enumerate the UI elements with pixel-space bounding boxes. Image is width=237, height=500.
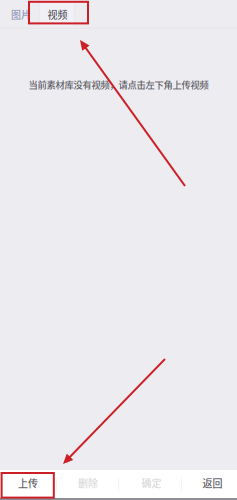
button[interactable]: 返回: [186, 470, 237, 496]
staticText: 当前素材库没有视频，请点击左下角上传视频: [28, 78, 208, 91]
button[interactable]: 视频: [40, 1, 75, 27]
staticText: 图片: [11, 7, 31, 22]
button[interactable]: 图片: [1, 1, 40, 27]
button[interactable]: 确定: [120, 470, 183, 496]
staticText: 确定: [141, 476, 161, 490]
button[interactable]: 删除: [57, 470, 119, 496]
staticText: 删除: [78, 476, 98, 490]
staticText: 上传: [18, 476, 38, 490]
staticText: 视频: [47, 7, 67, 22]
staticText: 返回: [202, 476, 222, 490]
button[interactable]: 上传: [0, 470, 56, 496]
